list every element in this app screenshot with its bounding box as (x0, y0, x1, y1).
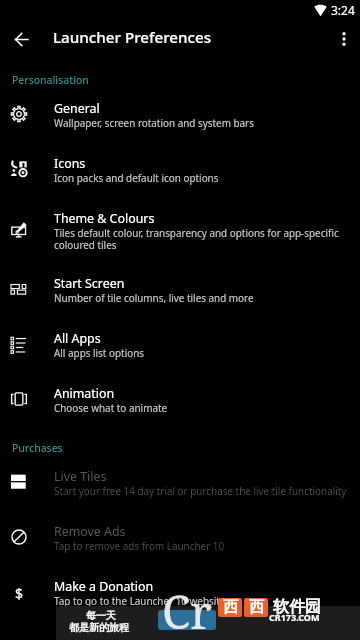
staticText: 西 (223, 598, 238, 617)
button[interactable]: Theme & Colours (0, 210, 360, 265)
staticText: Purchases (12, 441, 63, 455)
button[interactable]: General (0, 100, 360, 155)
staticText: Cr (162, 580, 212, 640)
staticText: General (54, 100, 100, 117)
staticText: Start your free 14 day trial or purchase… (54, 484, 347, 497)
staticText: CR173.COM (269, 611, 320, 623)
staticText: Tiles default colour, transparency and o… (54, 226, 349, 252)
staticText: Icons (54, 155, 86, 172)
staticText: 都是新的旅程 (69, 621, 129, 634)
staticText: Wallpaper, screen rotation and system ba… (54, 116, 254, 129)
staticText: Choose what to animate (54, 401, 168, 414)
button[interactable]: Remove Ads (0, 523, 360, 578)
button[interactable]: Live Tiles (0, 468, 360, 523)
button[interactable]: Back (2, 20, 40, 58)
staticText: 西 (249, 598, 264, 617)
button[interactable]: Start Screen (0, 275, 360, 330)
staticText: Personalisation (12, 73, 89, 87)
staticText: 每一天 (86, 609, 116, 622)
staticText: 3:24 (331, 2, 355, 18)
staticText: Launcher Preferences (53, 27, 212, 48)
staticText: All apps list options (54, 346, 145, 359)
staticText: Number of tile columns, live tiles and m… (54, 291, 254, 304)
staticText: Make a Donation (54, 578, 154, 595)
staticText: Start Screen (54, 275, 125, 292)
staticText: Tap to remove ads from Launcher 10 (54, 539, 225, 552)
staticText: All Apps (54, 330, 101, 347)
staticText: $ (15, 584, 24, 600)
staticText: Icon packs and default icon options (54, 171, 219, 184)
staticText: Animation (54, 385, 115, 402)
staticText: Remove Ads (54, 523, 126, 540)
staticText: 软件园 (273, 597, 321, 617)
button[interactable]: Animation (0, 385, 360, 440)
staticText: Live Tiles (54, 468, 107, 485)
staticText: Tap to go to the Launcher 10 website (54, 594, 226, 607)
button[interactable]: All Apps (0, 330, 360, 385)
staticText: Theme & Colours (54, 210, 155, 227)
button[interactable]: Icons (0, 155, 360, 210)
button[interactable]: $ (0, 578, 360, 633)
button[interactable]: More options (325, 20, 360, 58)
